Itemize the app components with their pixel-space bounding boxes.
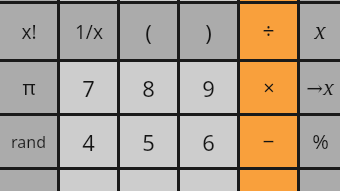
staticText: →x [306,74,334,101]
button[interactable]: π [0,62,57,113]
staticText: 7 [82,73,95,103]
button[interactable]: % [300,116,340,167]
button[interactable]: x! [0,4,57,59]
button[interactable]: 7 [60,62,117,113]
button[interactable]: ) [180,4,237,59]
button[interactable]: × [240,62,297,113]
staticText: π [22,74,36,101]
button[interactable]: 9 [180,62,237,113]
button[interactable]: 8 [120,62,177,113]
button[interactable]: ÷ [240,4,297,59]
button[interactable]: 5 [120,116,177,167]
staticText: rand [11,131,46,153]
staticText: 1/x [75,19,103,45]
staticText: x! [21,19,37,45]
staticText: × [263,74,275,101]
staticText: x [314,17,326,46]
button[interactable]: ( [120,4,177,59]
button[interactable]: rand [0,116,57,167]
button[interactable]: 4 [60,116,117,167]
button[interactable]: 6 [180,116,237,167]
button[interactable]: − [240,116,297,167]
button[interactable]: →x [300,62,340,113]
button[interactable]: x [300,4,340,59]
staticText: − [262,127,275,156]
staticText: ÷ [262,17,275,46]
staticText: 9 [202,73,215,103]
staticText: ) [205,17,212,47]
staticText: % [312,128,329,155]
button[interactable]: 1/x [60,4,117,59]
staticText: 6 [202,127,215,157]
staticText: 4 [82,127,95,157]
staticText: ( [145,17,152,47]
staticText: 8 [142,73,155,103]
staticText: 5 [142,127,155,157]
